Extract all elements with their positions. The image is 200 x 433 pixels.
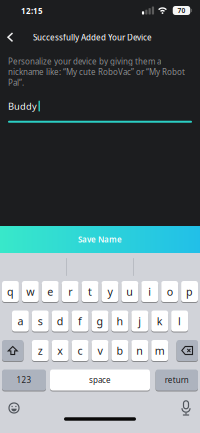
- button[interactable]: g: [91, 310, 108, 331]
- staticText: space: [89, 375, 111, 385]
- staticText: j: [138, 314, 141, 328]
- button[interactable]: s: [32, 310, 49, 331]
- button[interactable]: d: [52, 310, 69, 331]
- button[interactable]: e: [42, 281, 59, 302]
- button[interactable]: y: [101, 281, 118, 302]
- staticText: nickname like: “My cute RoboVac” or “My …: [8, 67, 185, 77]
- button[interactable]: l: [171, 310, 188, 331]
- staticText: Personalize your device by giving them a: [8, 56, 161, 67]
- staticText: d: [57, 314, 64, 328]
- staticText: i: [148, 284, 151, 299]
- button[interactable]: z: [32, 340, 49, 361]
- button[interactable]: space: [50, 369, 150, 390]
- staticText: p: [186, 284, 193, 299]
- staticText: h: [116, 314, 123, 328]
- staticText: g: [96, 314, 103, 328]
- button[interactable]: q: [2, 281, 19, 302]
- staticText: s: [38, 314, 43, 328]
- staticText: c: [78, 343, 83, 358]
- button[interactable]: b: [111, 340, 128, 361]
- staticText: t: [88, 284, 92, 299]
- button[interactable]: n: [131, 340, 148, 361]
- staticText: u: [126, 284, 133, 299]
- staticText: 12:15: [21, 6, 43, 16]
- button[interactable]: Emoji: [8, 402, 19, 413]
- staticText: e: [47, 284, 53, 299]
- staticText: v: [97, 343, 102, 358]
- staticText: Pal”.: [8, 77, 24, 88]
- staticText: n: [136, 343, 143, 358]
- button[interactable]: c: [72, 340, 88, 361]
- button[interactable]: return: [155, 369, 198, 390]
- staticText: x: [57, 343, 63, 358]
- button[interactable]: Dictate: [180, 400, 191, 416]
- button[interactable]: v: [91, 340, 108, 361]
- staticText: q: [7, 284, 14, 299]
- button[interactable]: m: [151, 340, 168, 361]
- button[interactable]: 123: [2, 369, 46, 390]
- staticText: b: [116, 343, 123, 358]
- staticText: o: [167, 284, 173, 299]
- button[interactable]: Save Name: [0, 226, 200, 253]
- staticText: 123: [16, 375, 31, 385]
- button[interactable]: Back: [0, 32, 20, 43]
- button[interactable]: f: [72, 310, 88, 331]
- staticText: r: [68, 284, 72, 299]
- button[interactable]: t: [82, 281, 98, 302]
- button[interactable]: a: [12, 310, 29, 331]
- staticText: z: [38, 343, 43, 358]
- button[interactable]: w: [22, 281, 39, 302]
- button[interactable]: h: [111, 310, 128, 331]
- button[interactable]: u: [121, 281, 138, 302]
- staticText: Buddy: [8, 100, 37, 112]
- button[interactable]: r: [62, 281, 79, 302]
- button[interactable]: k: [151, 310, 168, 331]
- staticText: m: [155, 343, 165, 358]
- staticText: Save Name: [78, 234, 122, 245]
- staticText: a: [17, 314, 23, 328]
- button[interactable]: Shift: [2, 340, 23, 361]
- staticText: y: [107, 284, 112, 299]
- staticText: w: [26, 284, 34, 299]
- staticText: k: [157, 314, 163, 328]
- button[interactable]: o: [161, 281, 178, 302]
- button[interactable]: Delete: [176, 340, 198, 361]
- staticText: Successfully Added Your Device: [33, 32, 152, 43]
- staticText: l: [178, 314, 181, 328]
- button[interactable]: p: [181, 281, 198, 302]
- button[interactable]: i: [141, 281, 158, 302]
- staticText: 70: [177, 6, 185, 15]
- staticText: return: [165, 375, 189, 385]
- button[interactable]: j: [131, 310, 148, 331]
- staticText: f: [78, 314, 82, 328]
- button[interactable]: x: [52, 340, 69, 361]
